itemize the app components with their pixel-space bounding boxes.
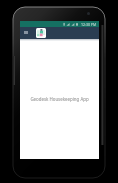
staticText: Geodesk Housekeeping App bbox=[30, 96, 89, 102]
button[interactable]: Menu bbox=[22, 28, 30, 36]
staticText: 12:30 PM bbox=[81, 22, 97, 27]
button[interactable]: App logo bbox=[36, 28, 46, 38]
